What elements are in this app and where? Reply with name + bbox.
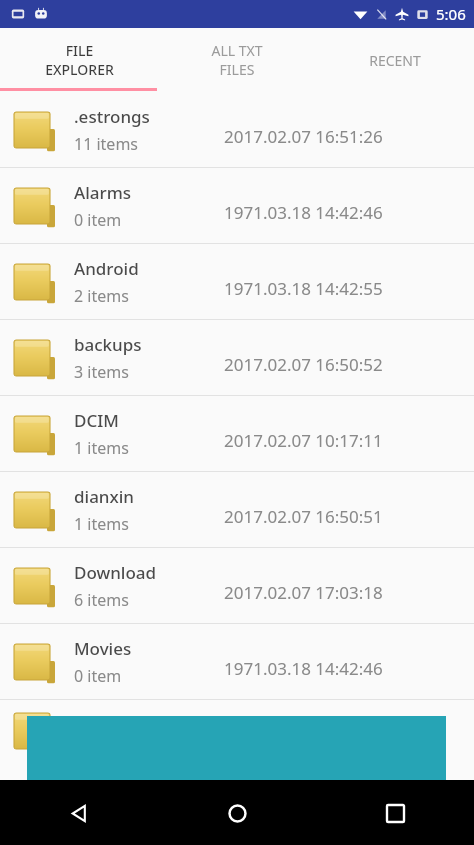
staticText: dianxin [74,485,134,508]
staticText: ALL TXT FILES [211,41,263,79]
button[interactable]: DCIM [0,396,474,471]
button[interactable]: RECENT [316,28,474,92]
button[interactable]: Download [0,548,474,623]
button[interactable]: .estrongs [0,92,474,167]
staticText: 2017.02.07 17:03:18 [224,581,383,604]
button[interactable]: Home [209,785,265,841]
staticText: Download [74,561,157,584]
button[interactable]: backups [0,320,474,395]
staticText: DCIM [74,409,119,432]
staticText: .estrongs [74,105,150,128]
staticText: 0 item [74,665,122,687]
staticText: 5:06 [436,4,466,24]
staticText: Android [74,257,139,280]
button[interactable]: Alarms [0,168,474,243]
staticText: 6 items [74,589,129,611]
staticText: 2017.02.07 16:50:51 [224,505,383,528]
staticText: Movies [74,637,132,660]
staticText: 1971.03.18 14:42:46 [224,657,383,680]
staticText: RECENT [369,51,421,70]
staticText: backups [74,333,142,356]
staticText: 2017.02.07 16:50:52 [224,353,383,376]
button[interactable]: dianxin [0,472,474,547]
button[interactable]: Movies [0,624,474,699]
staticText: FILE EXPLORER [45,41,114,79]
staticText: 2 items [74,285,129,307]
staticText: 1971.03.18 14:42:46 [224,201,383,224]
staticText: 11 items [74,133,139,155]
staticText: Alarms [74,181,132,204]
button[interactable]: Android [0,244,474,319]
button[interactable]: Back [51,785,107,841]
staticText: 2017.02.07 10:17:11 [224,429,383,452]
button[interactable]: Recents [367,785,423,841]
staticText: 1 items [74,437,129,459]
staticText: 2017.02.07 16:51:26 [224,125,383,148]
staticText: 0 item [74,209,122,231]
staticText: 1971.03.18 14:42:55 [224,277,383,300]
button[interactable]: ALL TXT FILES [158,28,316,92]
button[interactable]: FILE EXPLORER [0,28,158,92]
staticText: 3 items [74,361,129,383]
staticText: 1 items [74,513,129,535]
